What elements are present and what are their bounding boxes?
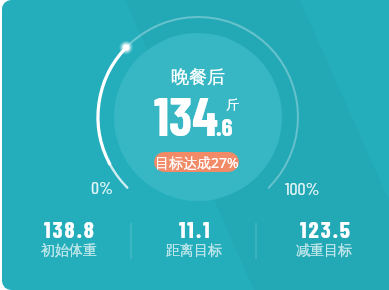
staticText: 减重目标 <box>296 242 352 260</box>
staticText: 晚餐后 <box>171 66 225 89</box>
staticText: 134 <box>154 83 218 147</box>
staticText: 初始体重 <box>41 242 97 260</box>
staticText: 100% <box>285 177 320 199</box>
staticText: 距离目标 <box>166 242 222 260</box>
staticText: 123.5 <box>300 215 352 243</box>
staticText: 斤 <box>226 96 239 112</box>
staticText: .6 <box>216 111 233 141</box>
staticText: 11.1 <box>179 215 212 243</box>
button[interactable]: 123.5 <box>261 212 389 246</box>
button[interactable]: 138.8 <box>5 212 135 246</box>
staticText: 138.8 <box>44 215 96 243</box>
staticText: 0% <box>91 176 114 198</box>
button[interactable]: 目标达成27% <box>154 152 239 172</box>
staticText: 目标达成27% <box>155 153 239 172</box>
button[interactable]: 11.1 <box>130 212 260 246</box>
